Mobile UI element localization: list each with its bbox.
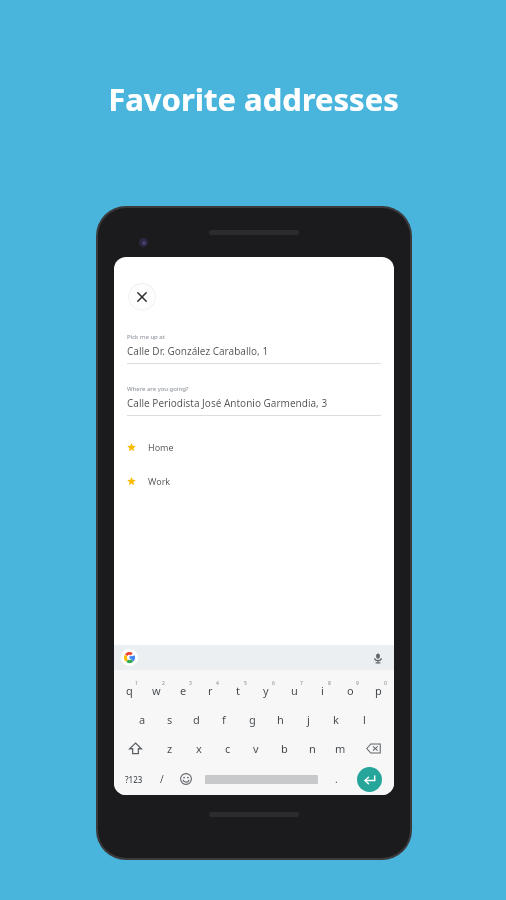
button[interactable]: p	[364, 676, 392, 705]
staticText: e	[180, 683, 187, 698]
staticText: o	[347, 683, 354, 698]
button[interactable]: q	[116, 676, 143, 705]
staticText: w	[152, 683, 161, 698]
staticText: v	[253, 741, 259, 756]
staticText: k	[333, 712, 339, 727]
staticText: 3	[189, 680, 192, 687]
button[interactable]: r	[197, 676, 224, 705]
button[interactable]: Emoji	[173, 763, 198, 795]
staticText: 5	[244, 680, 247, 687]
staticText: u	[291, 683, 298, 698]
staticText: m	[335, 741, 346, 756]
button[interactable]: Where are you going?	[127, 385, 381, 416]
staticText: p	[375, 683, 382, 698]
staticText: z	[167, 741, 173, 756]
button[interactable]: z	[155, 734, 184, 763]
staticText: x	[196, 741, 202, 756]
button[interactable]: /	[151, 763, 173, 795]
staticText: .	[335, 772, 338, 786]
button[interactable]: Voice input	[371, 651, 385, 665]
staticText: c	[225, 741, 231, 756]
staticText: s	[167, 712, 173, 727]
button[interactable]: Google	[121, 649, 138, 666]
button[interactable]: f	[210, 705, 238, 734]
staticText: 4	[216, 680, 219, 687]
staticText: q	[126, 683, 133, 698]
button[interactable]: o	[336, 676, 364, 705]
button[interactable]: d	[183, 705, 210, 734]
staticText: t	[236, 683, 240, 698]
button[interactable]: y	[252, 676, 280, 705]
staticText: 6	[272, 680, 275, 687]
staticText: 0	[384, 680, 387, 687]
staticText: Where are you going?	[127, 385, 189, 393]
button[interactable]: u	[280, 676, 308, 705]
staticText: Favorite addresses	[108, 78, 399, 120]
button[interactable]: g	[238, 705, 266, 734]
button[interactable]: m	[326, 734, 354, 763]
staticText: Work	[148, 475, 171, 487]
staticText: 2	[162, 680, 165, 687]
button[interactable]: n	[298, 734, 326, 763]
button[interactable]: c	[213, 734, 242, 763]
button[interactable]: Home	[127, 439, 381, 455]
staticText: Calle Dr. González Caraballo, 1	[127, 344, 269, 358]
staticText: 8	[328, 680, 331, 687]
staticText: j	[307, 712, 310, 727]
button[interactable]: a	[129, 705, 156, 734]
button[interactable]: k	[322, 705, 350, 734]
button[interactable]: b	[270, 734, 298, 763]
button[interactable]: Close	[128, 283, 156, 311]
staticText: Calle Periodista José Antonio Garmendia,…	[127, 396, 328, 410]
staticText: d	[193, 712, 200, 727]
staticText: 7	[300, 680, 303, 687]
button[interactable]: v	[242, 734, 270, 763]
button[interactable]: w	[143, 676, 170, 705]
button[interactable]: Shift	[116, 734, 155, 763]
staticText: i	[321, 683, 324, 698]
button[interactable]: ?123	[117, 763, 151, 795]
button[interactable]: s	[156, 705, 183, 734]
button[interactable]: Backspace	[354, 734, 392, 763]
button[interactable]: h	[266, 705, 294, 734]
staticText: h	[277, 712, 284, 727]
staticText: n	[309, 741, 316, 756]
staticText: l	[363, 712, 366, 727]
button[interactable]: x	[184, 734, 213, 763]
staticText: f	[222, 712, 226, 727]
button[interactable]: t	[224, 676, 252, 705]
staticText: a	[139, 712, 146, 727]
button[interactable]: Enter	[357, 767, 382, 792]
staticText: g	[249, 712, 256, 727]
button[interactable]: j	[294, 705, 322, 734]
button[interactable]: .	[325, 763, 347, 795]
button[interactable]: Work	[127, 473, 381, 489]
button[interactable]: i	[308, 676, 336, 705]
staticText: /	[160, 772, 164, 786]
staticText: Pick me up at	[127, 333, 165, 341]
button[interactable]: Pick me up at	[127, 333, 381, 364]
staticText: b	[281, 741, 288, 756]
staticText: ?123	[125, 774, 143, 785]
button[interactable]: l	[350, 705, 378, 734]
staticText: 1	[135, 680, 138, 687]
button[interactable]: Space	[205, 763, 318, 795]
staticText: 9	[356, 680, 359, 687]
button[interactable]: e	[170, 676, 197, 705]
staticText: y	[263, 683, 269, 698]
staticText: r	[208, 683, 213, 698]
staticText: Home	[148, 441, 174, 453]
